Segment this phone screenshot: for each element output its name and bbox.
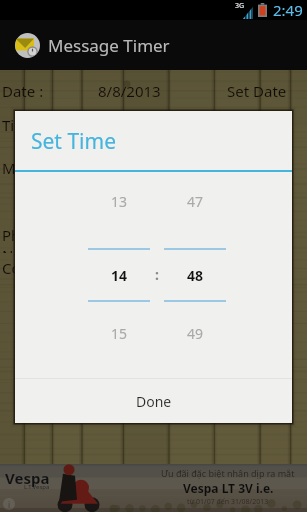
- staticText: :: [155, 265, 159, 284]
- staticText: Done: [136, 392, 172, 411]
- staticText: L.T.Vespa: [24, 483, 50, 491]
- button[interactable]: Set Date: [206, 81, 307, 101]
- button[interactable]: 47: [164, 172, 226, 248]
- staticText: Vespa: [5, 468, 50, 488]
- button[interactable]: Vespa: [0, 464, 307, 512]
- button[interactable]: 49: [164, 302, 226, 378]
- staticText: 15: [111, 324, 128, 343]
- staticText: Set Time: [31, 127, 116, 156]
- staticText: Time :: [2, 115, 45, 135]
- staticText: i: [8, 499, 11, 510]
- staticText: Vespa LT 3V i.e.: [183, 480, 274, 496]
- button[interactable]: 15: [88, 302, 150, 378]
- staticText: 2:49: [273, 0, 303, 20]
- button[interactable]: Set Time: [206, 115, 307, 135]
- button[interactable]: 48: [164, 250, 226, 300]
- button[interactable]: [18, 189, 289, 225]
- staticText: 13: [111, 192, 128, 211]
- staticText: Ưu đãi đặc biệt nhân dịp ra mắt: [161, 467, 295, 479]
- button[interactable]: 13: [88, 172, 150, 248]
- staticText: từ 01/07 đến 31/08/2013: [187, 497, 269, 507]
- button[interactable]: Done: [15, 379, 292, 423]
- staticText: Contact :: [2, 258, 65, 278]
- staticText: Date :: [2, 81, 44, 101]
- button[interactable]: Ad info: [3, 498, 15, 510]
- staticText: 14: [111, 266, 128, 285]
- staticText: 48: [187, 266, 204, 285]
- button[interactable]: Message Timer: [0, 20, 307, 70]
- button[interactable]: 14: [88, 250, 150, 300]
- staticText: 49: [187, 324, 204, 343]
- staticText: Message Timer: [48, 34, 170, 57]
- staticText: 47: [187, 192, 204, 211]
- staticText: Phone No :: [2, 225, 70, 253]
- staticText: 3G: [235, 1, 245, 11]
- staticText: Set Date: [227, 81, 287, 101]
- staticText: Message :: [2, 158, 70, 186]
- staticText: 8/8/2013: [98, 81, 161, 101]
